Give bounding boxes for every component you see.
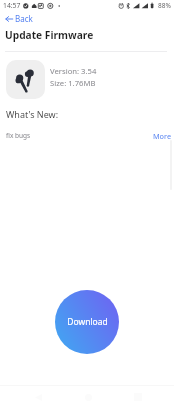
staticText: fix bugs bbox=[6, 131, 31, 140]
staticText: Download bbox=[67, 316, 108, 328]
staticText: Update Firmware bbox=[5, 28, 94, 42]
button[interactable]: Download bbox=[55, 290, 119, 354]
staticText: Version: 3.54 bbox=[50, 66, 97, 76]
staticText: 88% bbox=[158, 1, 171, 10]
staticText: Size: 1.76MB bbox=[50, 78, 96, 88]
button[interactable]: More bbox=[150, 128, 174, 144]
staticText: 14:57 bbox=[3, 1, 21, 10]
staticText: More bbox=[153, 131, 172, 141]
staticText: What's New: bbox=[6, 108, 59, 120]
staticText: Back bbox=[15, 13, 33, 24]
button[interactable]: Back bbox=[0, 11, 33, 26]
